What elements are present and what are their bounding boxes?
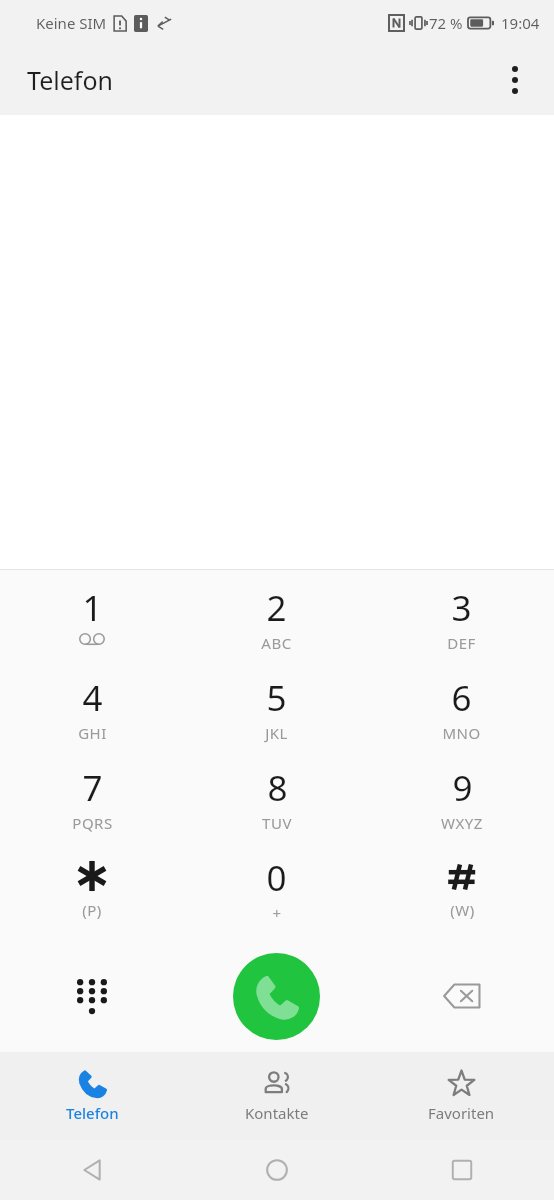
staticText: 3 [451,584,472,632]
staticText: Telefon [66,1103,119,1123]
button[interactable]: Löschen [369,940,554,1052]
staticText: 1 [82,584,103,632]
staticText: 9 [452,764,473,812]
staticText: Telefon [27,63,113,97]
staticText: 0 [266,854,287,902]
button[interactable]: 0 [184,854,369,940]
button[interactable]: Startbildschirm [184,1140,369,1200]
button[interactable]: (W) [369,854,554,940]
button[interactable]: Kontakte [184,1052,369,1140]
staticText: 8 [267,764,288,812]
staticText: 72 % [429,13,463,33]
staticText: Kontakte [245,1103,309,1123]
button[interactable]: Übersicht [369,1140,554,1200]
button[interactable]: 2 [184,584,369,674]
staticText: Keine SIM [36,13,107,33]
staticText: WXYZ [441,813,483,833]
button[interactable]: 6 [369,674,554,764]
button[interactable]: Telefon [0,1052,184,1140]
staticText: PQRS [72,813,113,833]
button[interactable]: Weitere Optionen [495,60,535,100]
button[interactable]: Wähltastatur ausblenden [0,940,184,1052]
staticText: 6 [451,674,472,722]
staticText: TUV [262,813,292,833]
staticText: (P) [82,900,102,920]
staticText: GHI [78,723,107,743]
button[interactable]: 1 [0,584,184,674]
staticText: MNO [442,723,481,743]
button[interactable]: 8 [184,764,369,854]
staticText: ABC [261,633,292,653]
button[interactable]: 5 [184,674,369,764]
button[interactable]: Favoriten [369,1052,554,1140]
button[interactable]: 9 [369,764,554,854]
staticText: (W) [450,900,475,920]
button[interactable]: 4 [0,674,184,764]
button[interactable]: 3 [369,584,554,674]
staticText: JKL [265,723,288,743]
staticText: 5 [266,674,287,722]
staticText: + [272,903,282,923]
button[interactable]: (P) [0,854,184,940]
button[interactable]: Zurück [0,1140,184,1200]
button[interactable]: 7 [0,764,184,854]
button[interactable]: Anrufen [233,953,320,1040]
staticText: 2 [266,584,287,632]
staticText: 4 [82,674,103,722]
staticText: Favoriten [428,1103,495,1123]
staticText: DEF [447,633,476,653]
staticText: 7 [82,764,103,812]
staticText: 19:04 [501,13,540,33]
